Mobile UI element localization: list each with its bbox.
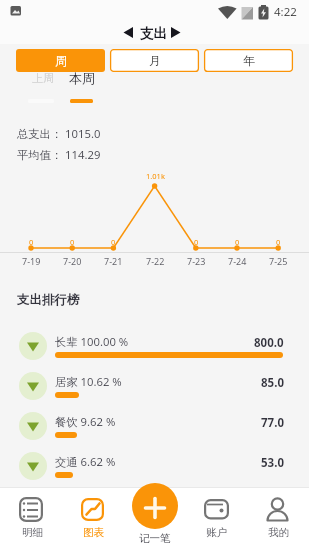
staticText: 77.0 bbox=[261, 415, 284, 431]
button[interactable]: 月 bbox=[110, 49, 199, 72]
staticText: 0 bbox=[111, 237, 116, 247]
staticText: 7-21 bbox=[104, 255, 123, 267]
staticText: 53.0 bbox=[261, 455, 284, 471]
staticText: 7-25 bbox=[269, 255, 288, 267]
staticText: 0 bbox=[29, 237, 34, 247]
button[interactable] bbox=[6, 489, 58, 545]
staticText: 0 bbox=[276, 237, 281, 247]
button[interactable] bbox=[67, 489, 119, 545]
staticText: 月 bbox=[149, 53, 161, 68]
button[interactable] bbox=[10, 367, 299, 405]
button[interactable] bbox=[132, 483, 178, 529]
staticText: 平均值： 114.29 bbox=[17, 147, 101, 162]
staticText: 明细 bbox=[22, 526, 43, 539]
staticText: 支出排行榜 bbox=[17, 292, 80, 308]
staticText: 7-24 bbox=[228, 255, 247, 267]
staticText: 居家 10.62 % bbox=[55, 374, 122, 389]
button[interactable] bbox=[10, 327, 299, 365]
button[interactable] bbox=[10, 447, 299, 485]
staticText: 85.0 bbox=[261, 375, 284, 391]
staticText: 1.01k bbox=[146, 171, 165, 181]
staticText: 年 bbox=[243, 53, 255, 68]
button[interactable] bbox=[190, 489, 242, 545]
staticText: 0 bbox=[235, 237, 240, 247]
staticText: 长辈 100.00 % bbox=[55, 334, 129, 349]
staticText: 本周 bbox=[69, 70, 95, 86]
staticText: 7-22 bbox=[146, 255, 165, 267]
staticText: 餐饮 9.62 % bbox=[55, 414, 116, 429]
staticText: 交通 6.62 % bbox=[55, 454, 116, 469]
staticText: 4:22 bbox=[274, 4, 297, 20]
button[interactable] bbox=[251, 489, 303, 545]
staticText: 账户 bbox=[206, 526, 227, 539]
staticText: 总支出： 1015.0 bbox=[17, 126, 101, 141]
staticText: 图表 bbox=[83, 526, 104, 539]
staticText: 周 bbox=[55, 53, 67, 68]
staticText: 7-23 bbox=[187, 255, 206, 267]
staticText: 7-20 bbox=[63, 255, 82, 267]
staticText: 我的 bbox=[268, 526, 289, 539]
staticText: 7-19 bbox=[22, 255, 41, 267]
button[interactable] bbox=[22, 68, 63, 104]
staticText: 0 bbox=[70, 237, 75, 247]
staticText: 800.0 bbox=[254, 335, 284, 351]
staticText: 支出 bbox=[140, 25, 167, 42]
staticText: 上周 bbox=[32, 71, 54, 85]
staticText: 记一笔 bbox=[139, 532, 171, 545]
button[interactable] bbox=[63, 68, 104, 104]
staticText: 0 bbox=[194, 237, 199, 247]
button[interactable] bbox=[10, 407, 299, 445]
button[interactable]: 年 bbox=[204, 49, 293, 72]
button[interactable]: 周 bbox=[16, 49, 105, 72]
